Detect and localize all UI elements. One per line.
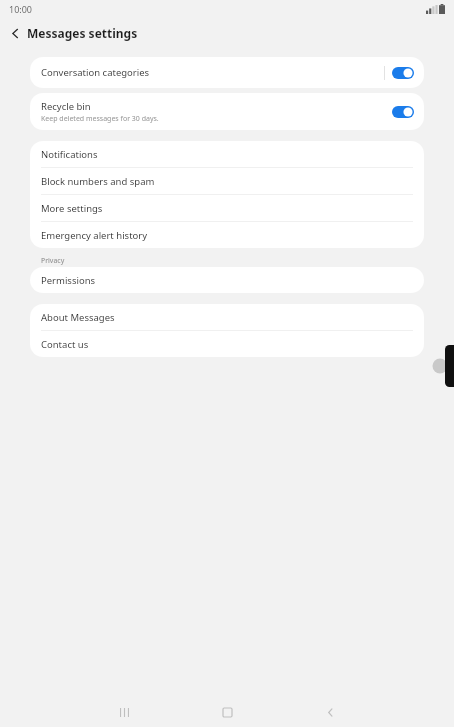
button[interactable]: Block numbers and spam [30, 168, 424, 194]
button[interactable]: Contact us [30, 331, 424, 357]
staticText: Privacy [41, 256, 65, 265]
button[interactable] [445, 345, 454, 387]
button[interactable]: Permissions [30, 267, 424, 293]
button[interactable]: Back [0, 18, 30, 48]
staticText: Messages settings [27, 25, 138, 41]
other: Edge panel [430, 345, 454, 387]
staticText: Contact us [41, 338, 89, 351]
button[interactable]: Recycle bin [30, 93, 424, 130]
staticText: Recycle bin [41, 100, 91, 113]
staticText: Permissions [41, 274, 96, 287]
button[interactable]: Toggle [392, 67, 414, 79]
button[interactable]: Home [210, 697, 244, 727]
button[interactable]: Toggle [392, 106, 414, 118]
staticText: About Messages [41, 311, 115, 324]
button[interactable]: Back [313, 697, 347, 727]
staticText: Emergency alert history [41, 229, 148, 242]
staticText: 10:00 [9, 3, 33, 15]
button[interactable]: Notifications [30, 141, 424, 167]
staticText: Notifications [41, 148, 98, 161]
staticText: Conversation categories [41, 66, 384, 79]
button[interactable]: Conversation categories [30, 57, 424, 88]
button[interactable]: More settings [30, 195, 424, 221]
button[interactable]: Recents [107, 697, 141, 727]
staticText: Keep deleted messages for 30 days. [41, 114, 159, 124]
button[interactable]: About Messages [30, 304, 424, 330]
button[interactable]: Emergency alert history [30, 222, 424, 248]
staticText: More settings [41, 202, 103, 215]
staticText: Block numbers and spam [41, 175, 155, 188]
